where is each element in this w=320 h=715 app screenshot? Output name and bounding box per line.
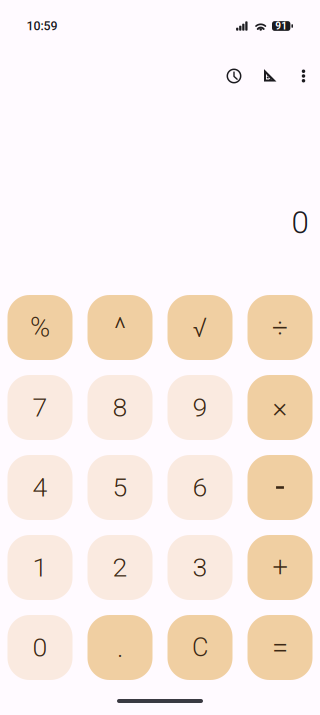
staticText: C [192,633,208,662]
staticText: √ [192,312,207,343]
staticText: 4 [32,472,47,503]
button[interactable]: = [247,615,312,680]
button[interactable]: C [167,615,232,680]
staticText: 0 [291,204,308,241]
staticText: 5 [112,472,127,503]
staticText: 3 [192,552,207,583]
button[interactable]: 3 [167,535,232,600]
staticText: 2 [112,552,127,583]
staticText: × [272,391,287,424]
staticText: % [30,311,50,343]
staticText: 0 [32,632,47,663]
staticText: = [272,630,288,665]
button[interactable]: 2 [87,535,152,600]
button[interactable]: 1 [7,535,72,600]
button[interactable]: Minus [247,455,312,520]
button[interactable]: 5 [87,455,152,520]
staticText: 6 [192,472,207,503]
staticText: ÷ [272,312,288,344]
button[interactable]: ^ [87,295,152,360]
button[interactable]: √ [167,295,232,360]
button[interactable]: % [7,295,72,360]
staticText: + [272,551,287,583]
staticText: 9 [192,392,207,423]
button[interactable]: . [87,615,152,680]
button[interactable]: 4 [7,455,72,520]
staticText: 8 [112,392,127,423]
staticText: 10:59 [26,19,57,33]
button[interactable]: 7 [7,375,72,440]
button[interactable]: More options [287,54,320,98]
button[interactable]: × [247,375,312,440]
staticText: 7 [32,392,47,423]
staticText: 91 [275,20,287,32]
button[interactable]: History [216,54,252,98]
button[interactable]: 6 [167,455,232,520]
button[interactable]: 8 [87,375,152,440]
staticText: ^ [114,312,126,346]
button[interactable]: + [247,535,312,600]
button[interactable]: 9 [167,375,232,440]
staticText: . [117,632,123,664]
button[interactable]: 0 [7,615,72,680]
button[interactable]: Unit converter [252,54,287,98]
staticText: 1 [32,552,47,583]
button[interactable]: ÷ [247,295,312,360]
